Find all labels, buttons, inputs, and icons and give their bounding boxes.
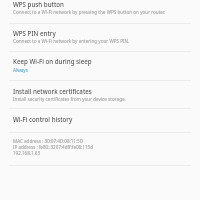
staticText: IP address : fe80::3207:4dff:fe08:115d	[13, 144, 93, 150]
button[interactable]: Install network certificates	[0, 80, 200, 108]
staticText: Connect to a Wi-Fi network by pressing t…	[13, 9, 166, 15]
button[interactable]: WPS PIN entry	[0, 24, 200, 51]
staticText: WPS push button	[13, 0, 64, 8]
staticText: Install security certificates from your …	[13, 96, 126, 102]
staticText: Install network certificates	[13, 87, 92, 95]
staticText: MAC address : 30:07:4D:08:11:5D	[13, 138, 84, 144]
button[interactable]: Wi-Fi control history	[0, 109, 200, 131]
staticText: Keep Wi-Fi on during sleep	[13, 57, 92, 65]
staticText: WPS PIN entry	[13, 29, 56, 37]
staticText: Wi-Fi control history	[13, 115, 73, 123]
button[interactable]: WPS push button	[0, 0, 200, 23]
staticText: Always	[13, 67, 28, 73]
staticText: Connect to a Wi-Fi network by entering y…	[13, 38, 130, 44]
staticText: 192.168.1.63	[13, 150, 41, 156]
button[interactable]: Keep Wi-Fi on during sleep	[0, 52, 200, 79]
